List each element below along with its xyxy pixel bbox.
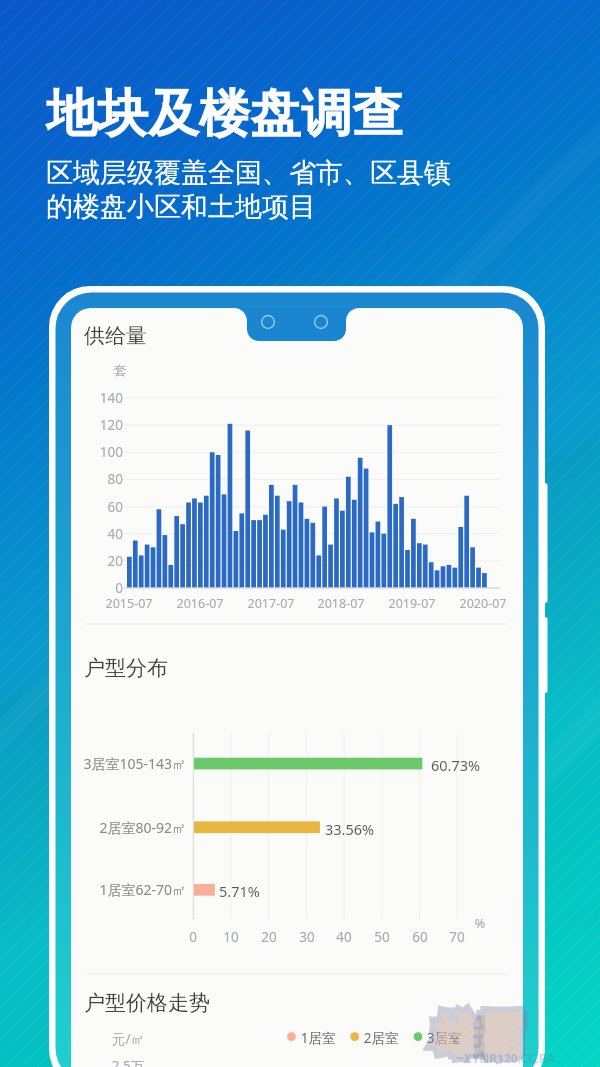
staticText: 20 bbox=[83, 552, 123, 570]
staticText: 区域层级覆盖全国、省市、区县镇 的楼盘小区和土地项目 bbox=[46, 156, 451, 224]
staticText: 2019-07 bbox=[382, 595, 442, 612]
staticText: 40 bbox=[83, 525, 123, 543]
staticText: 2居室80-92㎡ bbox=[66, 818, 186, 837]
staticText: 100 bbox=[83, 443, 123, 461]
staticText: 户型分布 bbox=[84, 655, 168, 681]
staticText: 地块及楼盘调查 bbox=[46, 82, 403, 146]
staticText: 户型价格走势 bbox=[84, 990, 210, 1016]
staticText: 60.73% bbox=[431, 755, 501, 775]
staticText: 5.71% bbox=[219, 881, 289, 901]
staticText: ~XYNR120.CC.RA bbox=[457, 1050, 556, 1066]
staticText: 0 bbox=[83, 579, 123, 597]
staticText: 50 bbox=[362, 928, 402, 946]
staticText: 120 bbox=[83, 416, 123, 434]
staticText: 140 bbox=[83, 389, 123, 407]
staticText: 10 bbox=[211, 928, 251, 946]
staticText: 供给量 bbox=[84, 323, 147, 349]
staticText: 20 bbox=[249, 928, 289, 946]
staticText: 33.56% bbox=[325, 819, 395, 839]
staticText: 元/㎡ bbox=[103, 1030, 153, 1048]
staticText: 套 bbox=[108, 362, 132, 378]
staticText: 1居室 bbox=[295, 1029, 341, 1047]
staticText: 0 bbox=[173, 928, 213, 946]
staticText: 30 bbox=[287, 928, 327, 946]
staticText: 雄霸 bbox=[434, 1008, 522, 1063]
staticText: 雄霸 bbox=[434, 1008, 522, 1063]
staticText: 40 bbox=[324, 928, 364, 946]
staticText: 3居室 bbox=[421, 1029, 467, 1047]
staticText: 2020-07 bbox=[453, 595, 513, 612]
staticText: 2017-07 bbox=[241, 595, 301, 612]
staticText: 2015-07 bbox=[99, 595, 159, 612]
staticText: 70 bbox=[437, 928, 477, 946]
staticText: 2.5万 bbox=[103, 1057, 153, 1067]
staticText: 60 bbox=[83, 498, 123, 516]
staticText: 3居室105-143㎡ bbox=[66, 754, 186, 773]
staticText: 2018-07 bbox=[311, 595, 371, 612]
staticText: 1居室62-70㎡ bbox=[66, 880, 186, 899]
staticText: 60 bbox=[400, 928, 440, 946]
staticText: 2居室 bbox=[358, 1029, 404, 1047]
staticText: 2016-07 bbox=[170, 595, 230, 612]
staticText: 80 bbox=[83, 470, 123, 488]
staticText: % bbox=[470, 915, 490, 932]
